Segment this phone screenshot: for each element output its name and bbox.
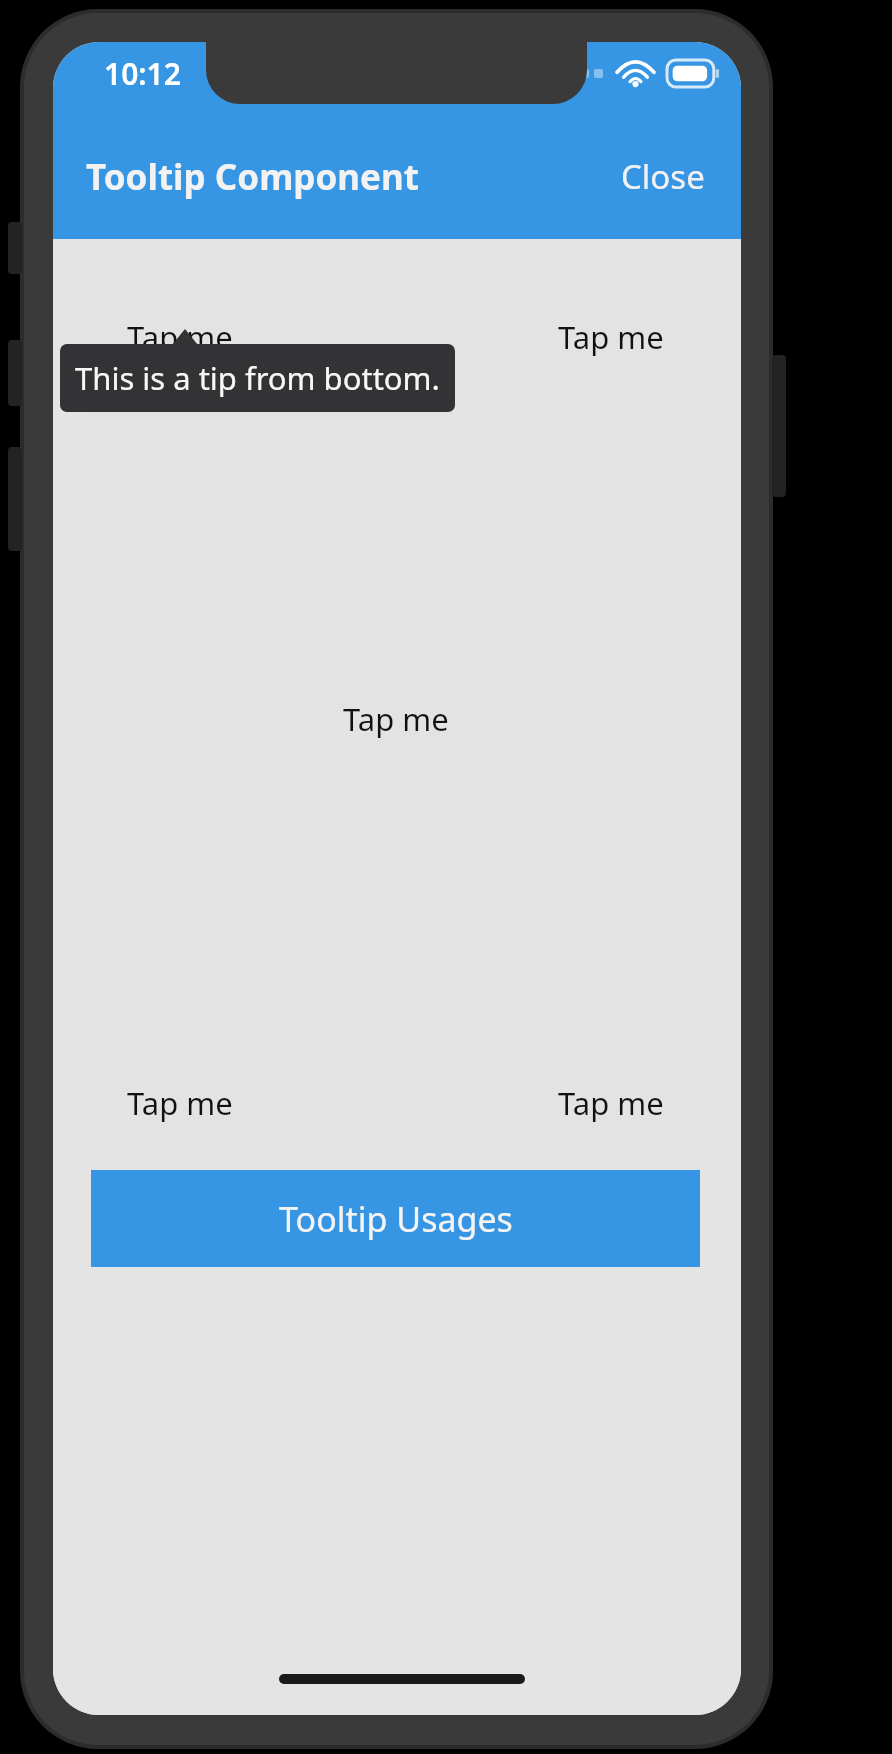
- staticText: Tap me: [127, 316, 233, 358]
- button[interactable]: This is a tip from bottom.: [60, 344, 455, 412]
- staticText: Tap me: [127, 1082, 233, 1124]
- staticText: 10:12: [104, 53, 181, 94]
- button[interactable]: Tap me: [341, 695, 451, 743]
- button[interactable]: Tap me: [125, 1079, 235, 1127]
- staticText: Tap me: [343, 698, 449, 740]
- other: Battery: [667, 60, 719, 87]
- button[interactable]: Tap me: [556, 1079, 666, 1127]
- button[interactable]: Tap me: [125, 313, 235, 361]
- staticText: Tooltip Component: [86, 153, 419, 201]
- staticText: Tooltip Usages: [279, 1196, 513, 1242]
- button[interactable]: Tap me: [556, 313, 666, 361]
- button[interactable]: Close: [615, 146, 711, 207]
- staticText: Tap me: [558, 316, 664, 358]
- button[interactable]: Tooltip Usages: [91, 1170, 700, 1267]
- staticText: Tap me: [558, 1082, 664, 1124]
- staticText: Close: [621, 154, 705, 199]
- other: Wi-Fi: [617, 60, 654, 87]
- staticText: This is a tip from bottom.: [75, 357, 440, 399]
